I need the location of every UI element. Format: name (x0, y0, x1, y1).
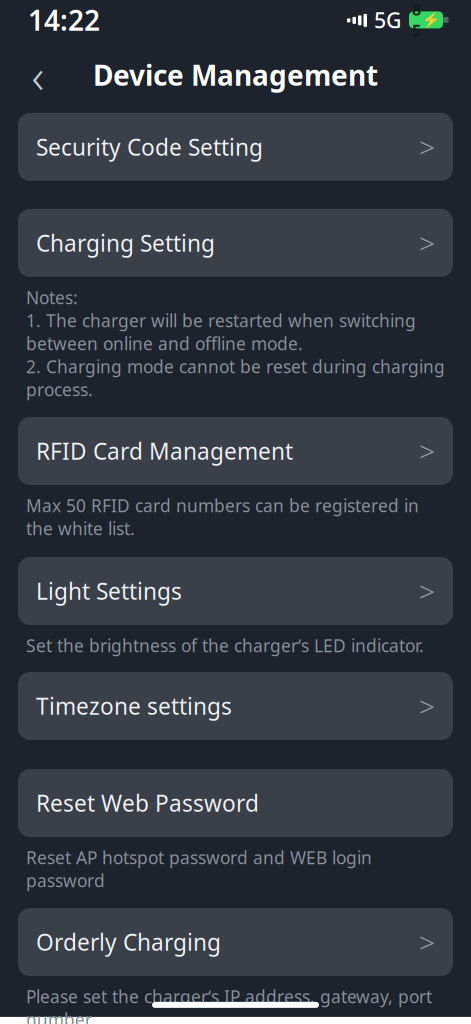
staticText: Security Code Setting (36, 132, 263, 162)
staticText: 5G (374, 6, 402, 34)
staticText: Notes: 1. The charger will be restarted … (26, 286, 445, 401)
button[interactable]: Reset Web Password (18, 769, 453, 837)
staticText: Reset Web Password (36, 788, 259, 818)
staticText: Orderly Charging (36, 927, 221, 957)
staticText: ⚡ (422, 11, 440, 28)
button[interactable]: Security Code Setting (18, 113, 453, 181)
staticText: Timezone settings (36, 691, 232, 721)
button[interactable]: Timezone settings (18, 672, 453, 740)
staticText: > (419, 224, 435, 261)
staticText: > (419, 572, 435, 610)
button[interactable]: Charging Setting (18, 209, 453, 277)
staticText: Reset AP hotspot password and WEB login … (26, 846, 372, 892)
staticText: Device Management (93, 56, 378, 93)
staticText: > (419, 687, 435, 725)
staticText: ‹ (31, 43, 44, 107)
staticText: > (419, 432, 435, 470)
staticText: Light Settings (36, 576, 182, 606)
staticText: Charging Setting (36, 228, 215, 258)
staticText: Please set the charger‘s IP address, gat… (26, 985, 432, 1024)
button[interactable]: Light Settings (18, 557, 453, 625)
button[interactable]: RFID Card Management (18, 417, 453, 485)
staticText: > (419, 923, 435, 961)
button[interactable]: Back (14, 51, 62, 99)
staticText: > (419, 128, 435, 165)
staticText: 14:22 (28, 1, 100, 38)
staticText: 85 (412, 0, 421, 41)
button[interactable]: Orderly Charging (18, 908, 453, 976)
staticText: RFID Card Management (36, 436, 293, 466)
staticText: Max 50 RFID card numbers can be register… (26, 494, 419, 540)
staticText: Set the brightness of the charger‘s LED … (26, 634, 424, 657)
